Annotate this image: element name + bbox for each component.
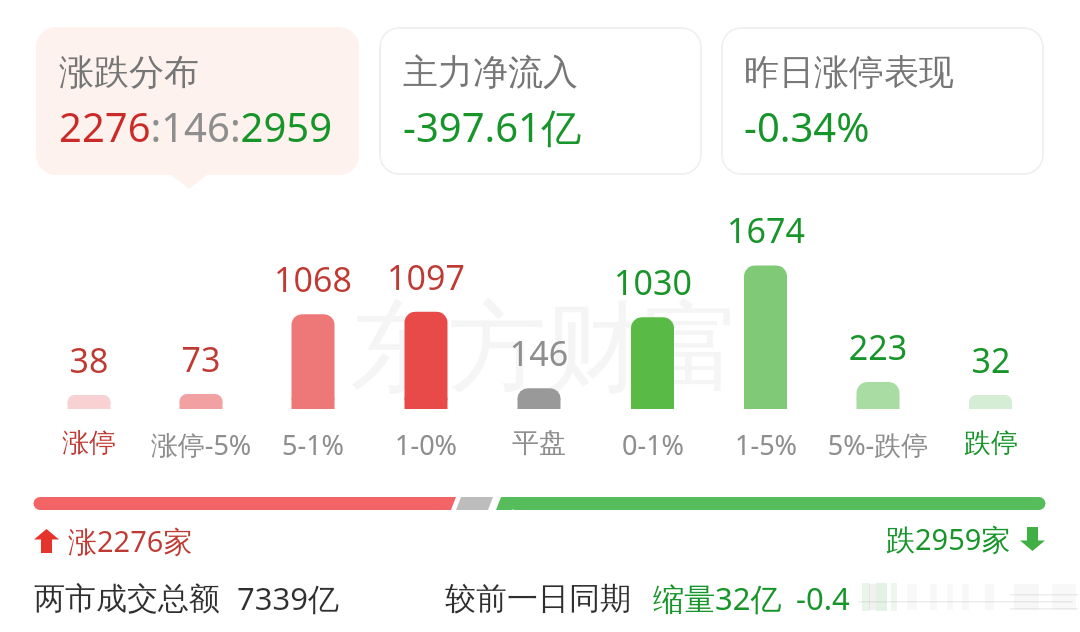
staticText: 跌2959家 — [886, 519, 1011, 559]
staticText: 38 — [19, 337, 159, 383]
staticText: -397.61亿 — [403, 99, 581, 154]
staticText: 涨停 — [9, 426, 169, 460]
staticText: 1674 — [696, 207, 836, 253]
staticText: 0-1% — [573, 426, 733, 463]
staticText: 东方财富 — [350, 287, 742, 410]
button[interactable]: 主力净流入 — [379, 27, 702, 175]
staticText: 主力净流入 — [403, 50, 578, 94]
staticText: 5-1% — [233, 426, 393, 463]
staticText: 1097 — [356, 254, 496, 300]
staticText: 较前一日同期 — [445, 579, 631, 618]
staticText: 146 — [469, 330, 609, 376]
staticText: 73 — [131, 336, 271, 382]
staticText: 昨日涨停表现 — [744, 50, 954, 94]
staticText: 平盘 — [459, 426, 619, 460]
staticText: 涨跌分布 — [59, 50, 199, 94]
staticText: 两市成交总额 — [34, 579, 220, 618]
staticText: -0.34% — [744, 99, 870, 153]
staticText: 涨停-5% — [121, 426, 281, 463]
staticText: 223 — [808, 324, 948, 370]
staticText: 涨2276家 — [68, 521, 193, 561]
staticText: 跌停 — [911, 426, 1071, 460]
button[interactable]: 昨日涨停表现 — [721, 27, 1044, 175]
other: Declining stocks — [1020, 527, 1045, 551]
staticText: 32 — [921, 337, 1061, 383]
other: Advancing stocks — [34, 529, 59, 553]
staticText: 缩量32亿 — [653, 577, 782, 619]
staticText: 1-5% — [686, 426, 846, 463]
staticText: 1068 — [243, 256, 383, 302]
staticText: 1-0% — [346, 426, 506, 463]
staticText: 5%-跌停 — [798, 426, 958, 463]
button[interactable]: 跌2959家 — [800, 519, 1045, 559]
staticText: -0.4 — [796, 577, 850, 619]
button[interactable]: 涨跌分布 — [36, 27, 359, 175]
staticText: 7339亿 — [237, 577, 339, 619]
staticText: 1030 — [583, 259, 723, 305]
staticText: 2276:146:2959 — [59, 99, 333, 153]
button[interactable]: Advancing stocks — [34, 521, 193, 561]
